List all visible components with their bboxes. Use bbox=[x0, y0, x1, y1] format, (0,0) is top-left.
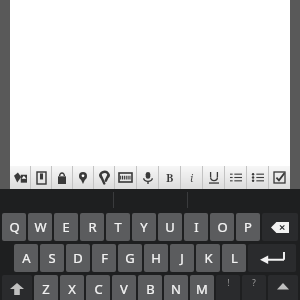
button[interactable]: Backspace bbox=[262, 213, 298, 241]
button[interactable]: Z bbox=[34, 275, 58, 300]
button[interactable]: Enter bbox=[248, 244, 296, 272]
staticText: J bbox=[180, 249, 184, 267]
button[interactable]: A bbox=[14, 244, 38, 272]
staticText: Z bbox=[42, 280, 50, 298]
button[interactable]: Checklist bbox=[269, 166, 290, 189]
staticText: Q bbox=[9, 218, 20, 236]
staticText: E bbox=[62, 218, 70, 236]
button[interactable]: Bulleted list bbox=[247, 166, 268, 189]
staticText: A bbox=[22, 249, 31, 267]
button[interactable]: Insert bookmark bbox=[31, 166, 51, 189]
staticText: L bbox=[231, 249, 238, 267]
button[interactable]: F bbox=[92, 244, 116, 272]
button[interactable]: Q bbox=[2, 213, 26, 241]
staticText: B bbox=[166, 170, 174, 185]
staticText: R bbox=[88, 218, 97, 236]
button[interactable]: Attach file bbox=[94, 166, 114, 189]
staticText: G bbox=[125, 249, 135, 267]
staticText: U bbox=[165, 218, 175, 236]
button[interactable]: J bbox=[170, 244, 194, 272]
button[interactable]: U bbox=[158, 213, 182, 241]
button[interactable]: ! bbox=[216, 275, 240, 300]
button[interactable]: E bbox=[54, 213, 78, 241]
button[interactable]: Insert image bbox=[10, 166, 30, 189]
button[interactable]: P bbox=[236, 213, 260, 241]
staticText: i bbox=[190, 170, 194, 185]
staticText: W bbox=[34, 218, 47, 236]
button[interactable]: L bbox=[222, 244, 246, 272]
button[interactable]: B bbox=[138, 275, 162, 300]
button[interactable]: ? bbox=[242, 275, 266, 300]
staticText: F bbox=[101, 249, 108, 267]
staticText: I bbox=[194, 218, 199, 236]
button[interactable]: H bbox=[144, 244, 168, 272]
button[interactable]: Y bbox=[132, 213, 156, 241]
staticText: Y bbox=[140, 218, 148, 236]
staticText: B bbox=[146, 280, 155, 298]
button[interactable]: V bbox=[112, 275, 136, 300]
staticText: D bbox=[73, 249, 83, 267]
button[interactable]: Voice input bbox=[137, 166, 158, 189]
button[interactable]: Italic bbox=[181, 166, 202, 189]
button[interactable]: Numbered list bbox=[225, 166, 246, 189]
button[interactable]: G bbox=[118, 244, 142, 272]
button[interactable]: Insert lock bbox=[52, 166, 72, 189]
button[interactable]: Insert location bbox=[73, 166, 93, 189]
button[interactable]: N bbox=[164, 275, 188, 300]
staticText: M bbox=[196, 280, 208, 298]
button[interactable]: I bbox=[184, 213, 208, 241]
staticText: ? bbox=[252, 277, 256, 288]
staticText: S bbox=[48, 249, 56, 267]
button[interactable]: D bbox=[66, 244, 90, 272]
button[interactable]: Insert card bbox=[115, 166, 136, 189]
staticText: X bbox=[68, 280, 76, 298]
button[interactable]: S bbox=[40, 244, 64, 272]
button[interactable]: Shift bbox=[2, 275, 32, 300]
staticText: C bbox=[94, 280, 103, 298]
staticText: H bbox=[151, 249, 161, 267]
button[interactable]: R bbox=[80, 213, 104, 241]
staticText: O bbox=[217, 218, 228, 236]
staticText: K bbox=[204, 249, 213, 267]
button[interactable]: Emoji bbox=[268, 275, 298, 300]
staticText: V bbox=[120, 280, 128, 298]
staticText: P bbox=[244, 218, 252, 236]
staticText: ! bbox=[227, 277, 230, 288]
staticText: N bbox=[171, 280, 181, 298]
button[interactable]: O bbox=[210, 213, 234, 241]
button[interactable]: X bbox=[60, 275, 84, 300]
button[interactable]: W bbox=[28, 213, 52, 241]
button[interactable]: M bbox=[190, 275, 214, 300]
staticText: T bbox=[114, 218, 122, 236]
button[interactable]: C bbox=[86, 275, 110, 300]
button[interactable]: T bbox=[106, 213, 130, 241]
button[interactable]: K bbox=[196, 244, 220, 272]
button[interactable]: Underline bbox=[203, 166, 224, 189]
button[interactable]: Bold bbox=[159, 166, 180, 189]
